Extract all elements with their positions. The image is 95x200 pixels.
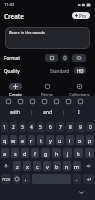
staticText: 6 <box>49 124 52 131</box>
button[interactable]: Portrait format <box>61 54 69 62</box>
button[interactable]: h <box>52 148 61 158</box>
button[interactable]: Hide keyboard <box>78 189 85 196</box>
staticText: r <box>30 137 33 144</box>
button[interactable]: x <box>23 161 31 171</box>
button[interactable]: j <box>63 148 72 158</box>
button[interactable]: u <box>56 135 64 145</box>
button[interactable]: b <box>53 161 61 171</box>
button[interactable]: Remix <box>31 81 63 96</box>
staticText: 5 <box>39 124 42 131</box>
button[interactable]: f <box>31 148 39 158</box>
staticText: Create <box>9 92 22 96</box>
button[interactable]: g <box>41 148 50 158</box>
button[interactable]: Keyboard tool 7 <box>74 96 86 106</box>
staticText: . <box>76 176 78 183</box>
button[interactable]: 4 <box>28 122 35 132</box>
button[interactable]: Square format <box>45 54 58 62</box>
button[interactable]: Keyboard tool 1 <box>2 96 14 106</box>
staticText: b <box>55 163 59 170</box>
button[interactable]: and <box>31 106 63 119</box>
staticText: k <box>77 150 80 157</box>
button[interactable]: Create <box>0 81 31 96</box>
button[interactable]: . <box>73 174 81 184</box>
button[interactable]: Standard <box>49 67 71 74</box>
staticText: x <box>26 163 29 170</box>
button[interactable]: HD <box>74 67 86 74</box>
staticText: Format <box>4 55 20 61</box>
button[interactable]: v <box>43 161 51 171</box>
button[interactable]: t <box>37 135 44 145</box>
staticText: 0 <box>89 124 92 131</box>
button[interactable]: Collections <box>63 81 95 96</box>
staticText: f <box>34 150 36 157</box>
staticText: o <box>78 137 82 144</box>
button[interactable]: , <box>22 174 30 184</box>
staticText: 1 <box>3 124 6 131</box>
button[interactable]: y <box>46 135 54 145</box>
button[interactable]: a <box>1 148 9 158</box>
button[interactable]: q <box>1 135 8 145</box>
button[interactable]: n <box>63 161 71 171</box>
staticText: , <box>25 176 27 183</box>
button[interactable]: 5 <box>37 122 44 132</box>
staticText: g <box>44 150 48 157</box>
button[interactable]: Pro <box>72 12 90 19</box>
button[interactable]: Landscape format <box>72 54 86 62</box>
button[interactable]: l <box>85 148 94 158</box>
button[interactable]: 9 <box>76 122 84 132</box>
button[interactable]: ?123 <box>1 174 11 184</box>
button[interactable]: Keyboard tool 4 <box>38 96 50 106</box>
button[interactable]: Keyboard tool 3 <box>26 96 38 106</box>
staticText: Create <box>4 12 24 20</box>
button[interactable]: 6 <box>46 122 54 132</box>
button[interactable]: w <box>10 135 17 145</box>
button[interactable]: p <box>86 135 94 145</box>
button[interactable]: Emoji <box>13 174 20 184</box>
staticText: Pro <box>79 13 87 19</box>
staticText: e <box>21 137 25 144</box>
button[interactable]: 3 <box>19 122 26 132</box>
staticText: a <box>3 150 7 157</box>
button[interactable]: Keyboard tool 5 <box>50 96 62 106</box>
staticText: Standard <box>50 68 70 74</box>
button[interactable]: I <box>63 106 95 119</box>
staticText: l <box>89 150 91 157</box>
button[interactable]: o <box>76 135 84 145</box>
button[interactable]: 7 <box>56 122 64 132</box>
staticText: d <box>23 150 27 157</box>
staticText: Bears in the woods <box>9 30 45 35</box>
button[interactable]: 0 <box>86 122 94 132</box>
button[interactable]: 1 <box>1 122 8 132</box>
button[interactable]: Bears in the woods <box>5 27 90 49</box>
button[interactable]: Keyboard tool 6 <box>62 96 74 106</box>
staticText: 2 <box>12 124 15 131</box>
staticText: I <box>78 109 80 116</box>
staticText: m <box>74 163 80 170</box>
button[interactable]: r <box>28 135 35 145</box>
button[interactable]: i <box>66 135 74 145</box>
button[interactable]: s <box>11 148 19 158</box>
staticText: Remix <box>41 92 53 96</box>
button[interactable]: with <box>0 106 31 119</box>
button[interactable]: 2 <box>10 122 17 132</box>
button[interactable]: Enter <box>83 174 94 184</box>
button[interactable]: e <box>19 135 26 145</box>
button[interactable]: c <box>33 161 41 171</box>
button[interactable]: 8 <box>66 122 74 132</box>
staticText: Collections <box>69 92 90 96</box>
staticText: u <box>58 137 62 144</box>
staticText: 3 <box>21 124 24 131</box>
button[interactable]: Keyboard tool 2 <box>14 96 26 106</box>
button[interactable]: k <box>74 148 83 158</box>
staticText: i <box>69 137 71 144</box>
button[interactable]: Backspace <box>83 161 94 171</box>
staticText: 11:03 <box>4 2 15 7</box>
staticText: n <box>65 163 69 170</box>
button[interactable]: m <box>73 161 81 171</box>
staticText: h <box>55 150 59 157</box>
staticText: Quality <box>4 68 20 74</box>
button[interactable]: Shift <box>1 161 11 171</box>
button[interactable]: z <box>13 161 21 171</box>
button[interactable]: d <box>21 148 29 158</box>
